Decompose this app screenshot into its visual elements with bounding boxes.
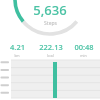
- button[interactable]: 222.13: [34, 42, 67, 58]
- staticText: kcal: [47, 53, 54, 58]
- staticText: km: [14, 53, 20, 58]
- staticText: 00:48: [74, 42, 94, 52]
- staticText: 5,636: [33, 1, 67, 19]
- button[interactable]: Steps progress ring: [0, 0, 100, 44]
- button[interactable]: 00:48: [67, 42, 100, 58]
- button[interactable]: 4.21: [0, 42, 34, 58]
- staticText: Steps: [44, 20, 57, 27]
- staticText: 4.21: [10, 42, 25, 52]
- staticText: 222.13: [39, 42, 63, 52]
- button[interactable]: 5,636: [0, 1, 100, 27]
- staticText: min: [80, 53, 87, 58]
- button[interactable]: Activity chart: [0, 58, 100, 98]
